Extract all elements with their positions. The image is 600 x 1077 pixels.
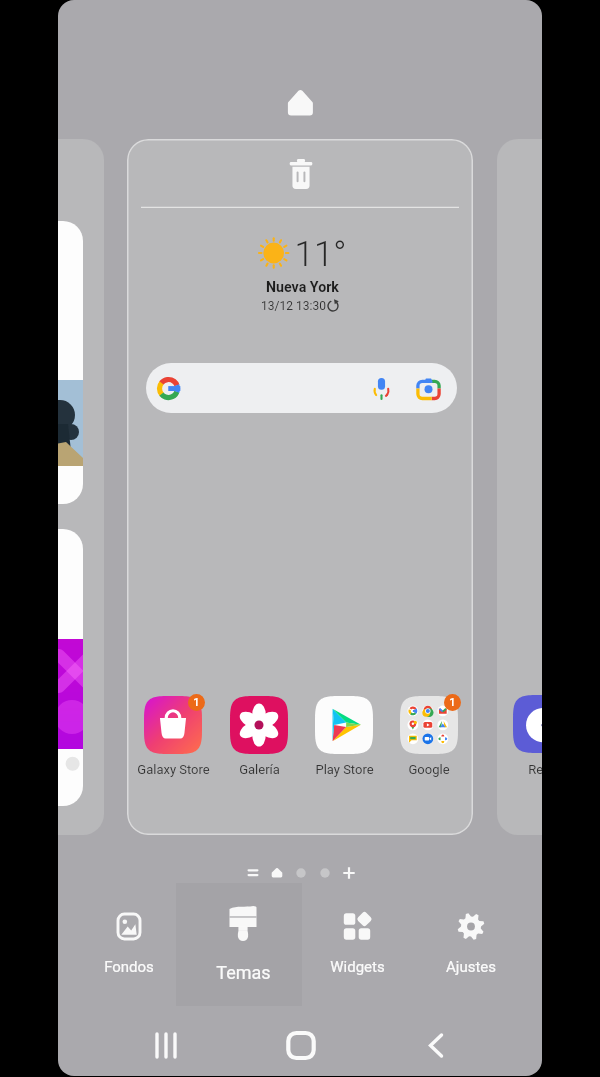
button[interactable]: 1 bbox=[130, 692, 216, 774]
button[interactable]: 11° bbox=[223, 225, 383, 321]
button[interactable]: Home screen bbox=[272, 78, 324, 126]
staticText: Ajustes bbox=[446, 958, 496, 976]
staticText: Galaxy Store bbox=[137, 762, 210, 777]
button[interactable]: Search bbox=[146, 363, 457, 413]
staticText: Galería bbox=[239, 762, 280, 777]
button[interactable]: Temas bbox=[186, 883, 300, 1007]
staticText: 1 bbox=[449, 696, 456, 709]
button[interactable]: Previous page bbox=[58, 139, 104, 835]
staticText: Temas bbox=[216, 962, 271, 983]
staticText: Play Store bbox=[315, 762, 374, 777]
button[interactable]: Galería bbox=[216, 692, 302, 774]
button[interactable]: Page 4 bbox=[313, 864, 337, 882]
staticText: Widgets bbox=[330, 958, 385, 976]
staticText: 13/12 13:30 bbox=[261, 299, 326, 313]
button[interactable]: Add page bbox=[337, 864, 361, 882]
button[interactable]: Play Store bbox=[301, 692, 387, 774]
button[interactable]: Widgets bbox=[300, 883, 414, 1007]
staticText: Google bbox=[408, 762, 450, 777]
button[interactable]: Back bbox=[381, 1017, 491, 1074]
button[interactable]: Page 3 bbox=[289, 864, 313, 882]
button[interactable]: Delete page bbox=[277, 150, 325, 198]
staticText: Fondos bbox=[104, 958, 154, 976]
staticText: Nueva York bbox=[266, 279, 339, 296]
button[interactable]: Home bbox=[246, 1017, 356, 1074]
button[interactable]: Ajustes bbox=[414, 883, 528, 1007]
staticText: 11° bbox=[294, 234, 347, 275]
button[interactable]: Next page bbox=[497, 139, 542, 835]
staticText: 1 bbox=[193, 696, 200, 709]
staticText: Reloj bbox=[528, 762, 542, 777]
button[interactable]: Recents bbox=[111, 1017, 221, 1074]
button[interactable]: Fondos bbox=[72, 883, 186, 1007]
button[interactable]: Reloj bbox=[499, 692, 542, 774]
button[interactable]: App list page bbox=[241, 864, 265, 882]
button[interactable]: Home page bbox=[265, 864, 289, 882]
button[interactable]: 1 bbox=[386, 692, 472, 774]
